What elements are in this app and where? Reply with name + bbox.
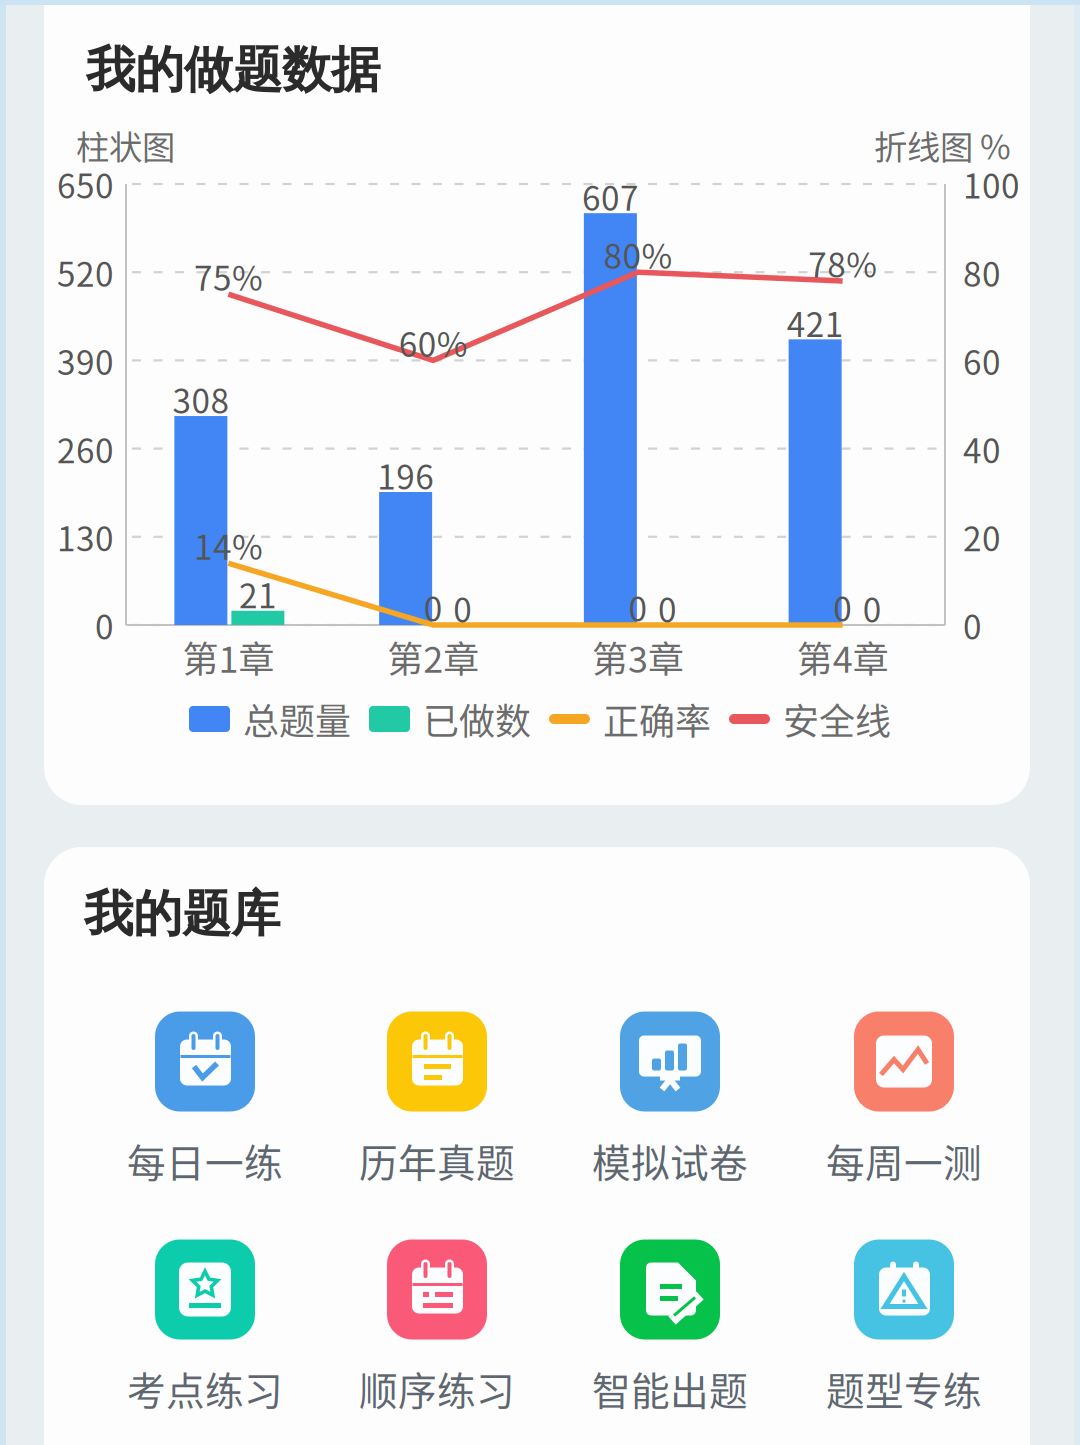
staticText: 智能出题 bbox=[592, 1360, 748, 1416]
staticText: 0 bbox=[833, 583, 852, 631]
staticText: 21 bbox=[239, 570, 277, 618]
staticText: 308 bbox=[172, 375, 229, 423]
staticText: 421 bbox=[787, 298, 844, 346]
staticText: 第2章 bbox=[387, 631, 479, 683]
button[interactable]: 顺序练习 bbox=[337, 1238, 537, 1418]
staticText: 0 bbox=[453, 584, 472, 632]
staticText: 已做数 bbox=[423, 693, 531, 745]
button[interactable]: 智能出题 bbox=[570, 1238, 770, 1418]
staticText: 607 bbox=[582, 172, 639, 220]
staticText: 顺序练习 bbox=[359, 1360, 515, 1416]
staticText: 第4章 bbox=[797, 631, 889, 683]
staticText: 0 bbox=[95, 601, 114, 649]
staticText: 0 bbox=[963, 601, 982, 649]
staticText: 考点练习 bbox=[127, 1360, 283, 1416]
button[interactable]: 考点练习 bbox=[105, 1238, 305, 1418]
staticText: 14% bbox=[194, 521, 263, 569]
staticText: 40 bbox=[963, 424, 1001, 473]
button[interactable]: 每周一测 bbox=[804, 1010, 1004, 1190]
staticText: 我的题库 bbox=[84, 883, 280, 945]
staticText: 60 bbox=[963, 336, 1001, 385]
staticText: 模拟试卷 bbox=[592, 1132, 748, 1188]
staticText: 78% bbox=[808, 239, 877, 287]
staticText: 100 bbox=[963, 160, 1020, 208]
staticText: 每日一练 bbox=[127, 1132, 283, 1188]
staticText: 80% bbox=[603, 230, 672, 278]
staticText: 折线图 % bbox=[874, 121, 1011, 169]
staticText: 0 bbox=[628, 583, 647, 631]
staticText: 650 bbox=[57, 160, 114, 208]
staticText: 总题量 bbox=[243, 693, 351, 745]
staticText: 柱状图 bbox=[76, 121, 175, 169]
staticText: 我的做题数据 bbox=[86, 39, 380, 101]
staticText: 每周一测 bbox=[826, 1132, 982, 1188]
staticText: 260 bbox=[57, 424, 114, 473]
staticText: 520 bbox=[57, 248, 114, 296]
button[interactable]: 模拟试卷 bbox=[570, 1010, 770, 1190]
staticText: 正确率 bbox=[603, 693, 711, 745]
staticText: 0 bbox=[658, 584, 677, 632]
button[interactable]: 每日一练 bbox=[105, 1010, 305, 1190]
staticText: 196 bbox=[377, 451, 434, 499]
staticText: 80 bbox=[963, 248, 1001, 296]
button[interactable]: 题型专练 bbox=[804, 1238, 1004, 1418]
staticText: 第1章 bbox=[182, 631, 274, 683]
staticText: 0 bbox=[424, 583, 443, 631]
staticText: 20 bbox=[963, 513, 1001, 561]
staticText: 60% bbox=[399, 318, 468, 367]
button[interactable]: 历年真题 bbox=[337, 1010, 537, 1190]
staticText: 历年真题 bbox=[359, 1132, 515, 1188]
staticText: 75% bbox=[194, 252, 263, 300]
staticText: 0 bbox=[863, 584, 882, 632]
staticText: 第3章 bbox=[592, 631, 684, 683]
staticText: 390 bbox=[57, 336, 114, 385]
staticText: 130 bbox=[57, 513, 114, 561]
staticText: 安全线 bbox=[783, 693, 891, 745]
staticText: 题型专练 bbox=[826, 1360, 982, 1416]
